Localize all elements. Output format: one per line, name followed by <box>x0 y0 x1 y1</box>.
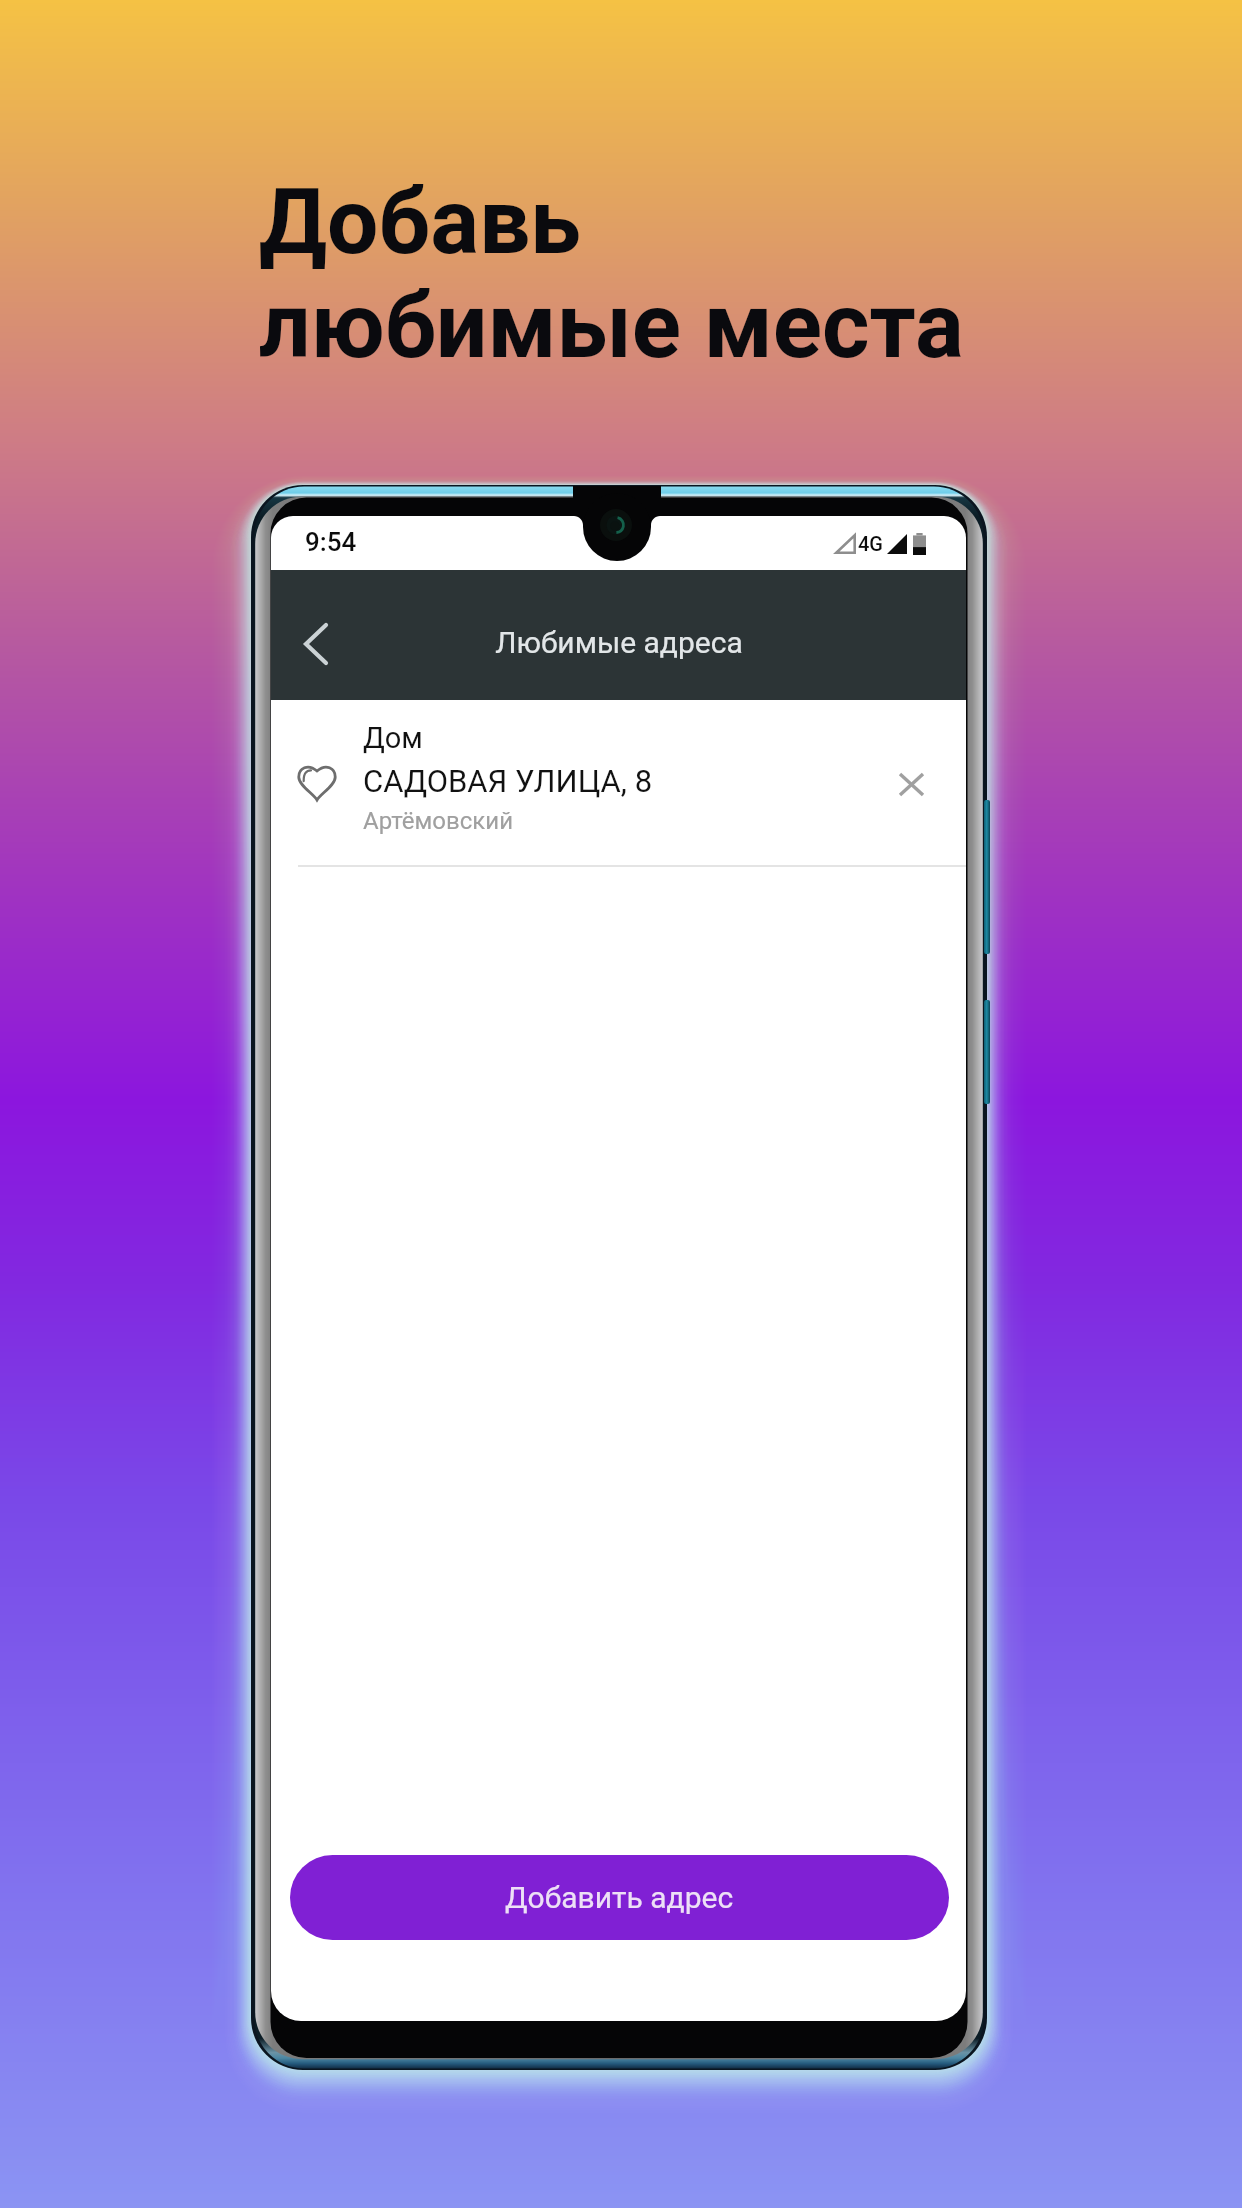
staticText: 4G <box>858 532 883 555</box>
staticText: Добавить адрес <box>505 1880 734 1915</box>
button[interactable]: Дом <box>271 700 966 867</box>
staticText: Дом <box>363 721 423 755</box>
button[interactable]: Back <box>280 608 352 680</box>
staticText: 9:54 <box>305 527 357 557</box>
staticText: любимые места <box>259 273 964 380</box>
staticText: Добавь <box>259 169 581 276</box>
button[interactable]: Remove address <box>883 756 939 812</box>
button[interactable]: Добавить адрес <box>290 1855 949 1940</box>
staticText: САДОВАЯ УЛИЦА, 8 <box>363 763 653 799</box>
staticText: Артёмовский <box>363 807 513 835</box>
staticText: Любимые адреса <box>495 625 743 660</box>
